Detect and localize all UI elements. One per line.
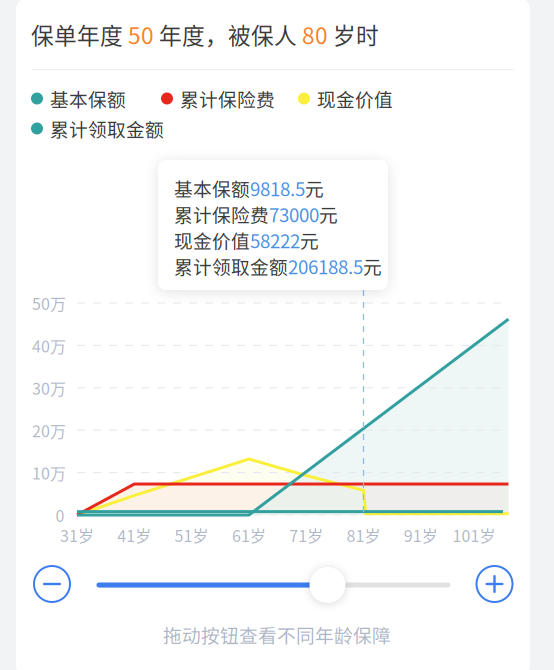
staticText: 91岁 xyxy=(404,523,438,547)
staticText: 0 xyxy=(55,503,64,527)
staticText: 现金价值 xyxy=(174,226,250,253)
staticText: 30万 xyxy=(32,376,66,399)
button[interactable]: 年龄滑块 xyxy=(309,567,345,603)
staticText: 保单年度 xyxy=(31,18,128,51)
staticText: 累计领取金额 xyxy=(174,252,288,279)
staticText: 71岁 xyxy=(289,523,323,547)
button[interactable]: 减少年龄 xyxy=(29,561,75,607)
staticText: 累计保险费 xyxy=(180,85,275,112)
staticText: 73000 xyxy=(269,200,319,227)
staticText: 80 xyxy=(302,18,328,51)
staticText: 年度，被保人 xyxy=(154,18,302,51)
staticText: 累计领取金额 xyxy=(50,115,164,142)
staticText: 50 xyxy=(128,18,154,51)
staticText: 9818.5 xyxy=(250,174,305,201)
staticText: 41岁 xyxy=(117,523,151,547)
staticText: 现金价值 xyxy=(317,85,393,112)
staticText: 基本保额 xyxy=(174,174,250,201)
staticText: 元 xyxy=(363,252,382,279)
staticText: 基本保额 xyxy=(50,85,126,112)
staticText: 50万 xyxy=(32,291,66,315)
staticText: 20万 xyxy=(32,419,66,442)
staticText: 元 xyxy=(305,174,324,201)
staticText: 累计保险费 xyxy=(174,200,269,227)
staticText: 81岁 xyxy=(346,523,380,547)
staticText: 10万 xyxy=(32,461,66,484)
staticText: 拖动按钮查看不同年龄保障 xyxy=(163,621,391,648)
staticText: 51岁 xyxy=(175,523,209,547)
staticText: 元 xyxy=(319,200,338,227)
button[interactable]: 增加年龄 xyxy=(471,561,517,607)
staticText: 61岁 xyxy=(232,523,266,547)
staticText: 岁时 xyxy=(328,18,379,51)
staticText: 206188.5 xyxy=(288,252,363,279)
staticText: 58222 xyxy=(250,226,300,253)
staticText: 31岁 xyxy=(60,523,94,547)
staticText: 元 xyxy=(300,226,319,253)
staticText: 101岁 xyxy=(453,523,496,547)
staticText: 40万 xyxy=(32,334,66,357)
